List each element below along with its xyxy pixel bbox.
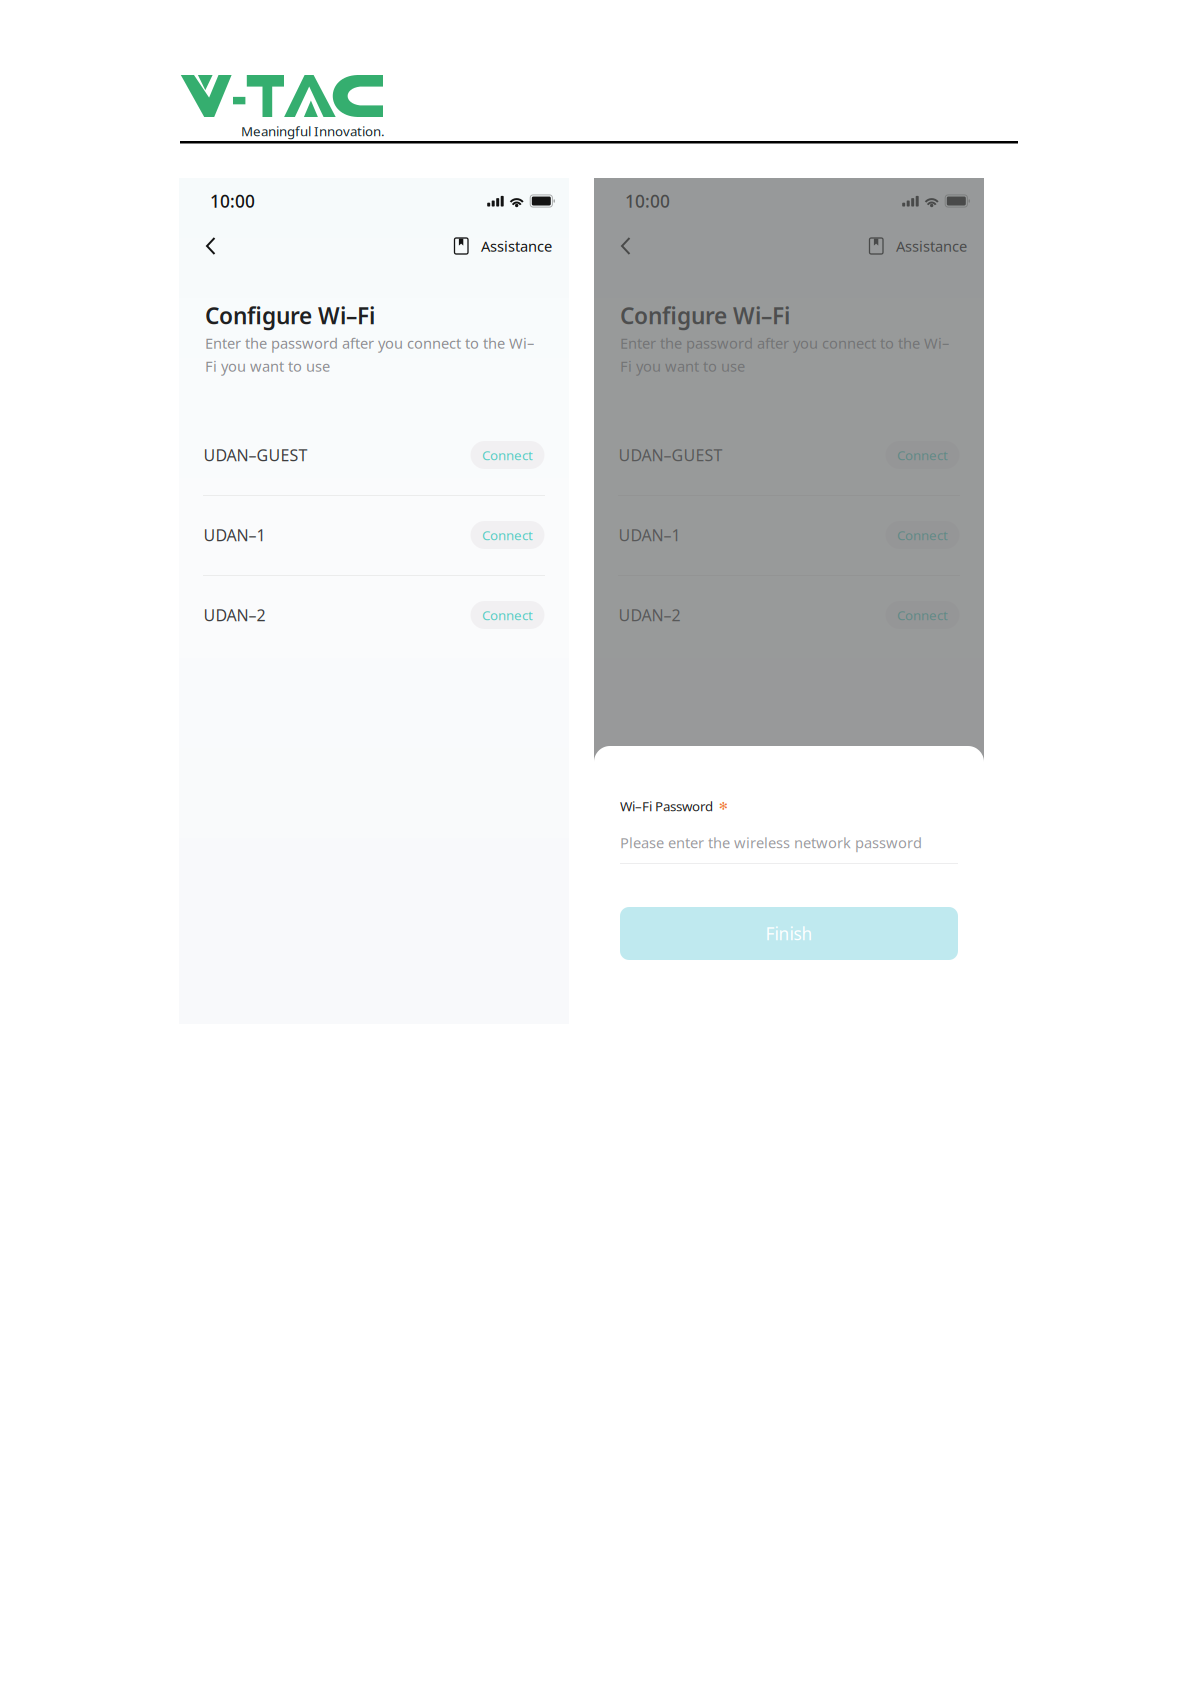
staticText: Connect	[897, 446, 948, 464]
button[interactable]: Back	[620, 229, 650, 263]
staticText: Meaningful Innovation.	[241, 122, 385, 140]
button[interactable]: Finish	[620, 907, 958, 960]
staticText: 10:00	[210, 189, 255, 212]
staticText: Connect	[897, 606, 948, 624]
staticText: Assistance	[896, 236, 967, 256]
button[interactable]: Connect to UDAN–2	[470, 601, 544, 629]
button[interactable]: Back	[205, 229, 235, 263]
staticText: Connect	[482, 526, 533, 544]
staticText: Wi–Fi Password	[620, 797, 713, 815]
staticText: UDAN–GUEST	[203, 444, 307, 466]
staticText: Connect	[482, 606, 533, 624]
button[interactable]: Connect to UDAN–2	[885, 601, 959, 629]
button[interactable]: UDAN–GUEST	[203, 431, 544, 479]
button[interactable]: Connect to UDAN–GUEST	[470, 441, 544, 469]
staticText: UDAN–1	[618, 524, 680, 546]
staticText: Fi you want to use	[620, 356, 745, 376]
staticText: UDAN–GUEST	[618, 444, 722, 466]
button[interactable]: UDAN–2	[203, 591, 544, 639]
staticText: Enter the password after you connect to …	[620, 333, 949, 353]
button[interactable]: Connect to UDAN–1	[470, 521, 544, 549]
button[interactable]: Assistance	[454, 229, 552, 263]
button[interactable]: Connect to UDAN–GUEST	[885, 441, 959, 469]
staticText: ✻	[719, 800, 728, 812]
button[interactable]: UDAN–1	[203, 511, 544, 559]
staticText: Assistance	[481, 236, 552, 256]
button[interactable]: UDAN–GUEST	[618, 431, 959, 479]
button[interactable]: UDAN–1	[618, 511, 959, 559]
button[interactable]: Assistance	[869, 229, 967, 263]
staticText: 10:00	[625, 189, 670, 212]
staticText: Connect	[897, 526, 948, 544]
staticText: UDAN–2	[618, 604, 680, 626]
staticText: Configure Wi–Fi	[205, 300, 375, 330]
staticText: Fi you want to use	[205, 356, 330, 376]
staticText: UDAN–2	[203, 604, 265, 626]
staticText: Finish	[765, 922, 812, 945]
staticText: UDAN–1	[203, 524, 265, 546]
staticText: Please enter the wireless network passwo…	[620, 833, 922, 852]
staticText: Enter the password after you connect to …	[205, 333, 534, 353]
button[interactable]: UDAN–2	[618, 591, 959, 639]
button[interactable]: Connect to UDAN–1	[885, 521, 959, 549]
staticText: Configure Wi–Fi	[620, 300, 790, 330]
staticText: Connect	[482, 446, 533, 464]
